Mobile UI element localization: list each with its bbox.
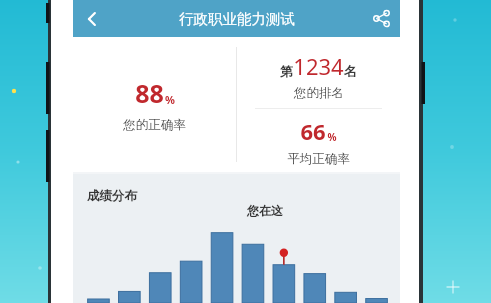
staticText: 名 (344, 63, 357, 79)
staticText: 行政职业能力测试 (179, 10, 295, 28)
staticText: 您在这 (247, 203, 283, 218)
staticText: 第 (280, 63, 293, 79)
staticText: 66 (300, 116, 326, 146)
staticText: 您的排名 (294, 85, 344, 101)
button[interactable]: Share (362, 0, 400, 37)
staticText: % (165, 92, 175, 107)
staticText: 平均正确率 (287, 151, 350, 167)
button[interactable]: Back (73, 0, 111, 37)
button[interactable]: 行政职业能力测试 (179, 10, 295, 28)
staticText: 88 (135, 76, 164, 110)
staticText: 您的正确率 (123, 117, 186, 133)
staticText: % (327, 130, 337, 144)
staticText: 成绩分布 (87, 188, 137, 204)
staticText: 1234 (293, 51, 344, 81)
